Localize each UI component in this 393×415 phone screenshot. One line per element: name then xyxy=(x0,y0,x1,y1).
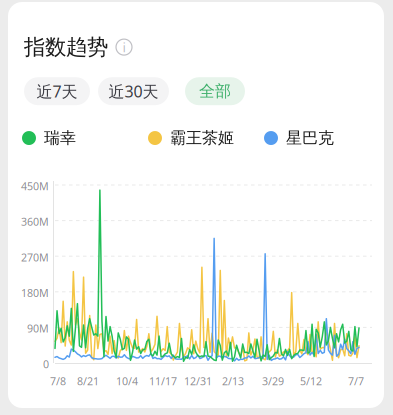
staticText: 2/13 xyxy=(222,374,244,388)
button[interactable]: 全部 xyxy=(185,77,245,105)
staticText: 0 xyxy=(43,357,49,371)
staticText: 近30天 xyxy=(108,81,158,102)
staticText: 180M xyxy=(21,286,49,300)
staticText: 3/29 xyxy=(262,374,284,388)
staticText: 近7天 xyxy=(36,81,77,102)
staticText: 5/12 xyxy=(300,374,322,388)
staticText: 450M xyxy=(21,179,49,193)
staticText: 瑞幸 xyxy=(44,128,76,148)
button[interactable]: About index trend xyxy=(116,39,132,55)
staticText: i xyxy=(122,38,125,56)
staticText: 霸王茶姬 xyxy=(170,128,234,148)
staticText: 8/21 xyxy=(77,374,99,388)
staticText: 360M xyxy=(21,215,49,229)
button[interactable]: 近30天 xyxy=(98,77,169,105)
staticText: 全部 xyxy=(199,81,231,101)
button[interactable]: 近7天 xyxy=(24,77,90,105)
staticText: 11/17 xyxy=(149,374,177,388)
staticText: 270M xyxy=(21,250,49,264)
staticText: 星巴克 xyxy=(286,128,334,148)
staticText: 10/4 xyxy=(116,374,138,388)
staticText: 指数趋势 xyxy=(24,34,108,60)
staticText: 90M xyxy=(27,321,49,336)
staticText: 7/7 xyxy=(348,374,364,388)
staticText: 7/8 xyxy=(50,374,66,388)
staticText: 12/31 xyxy=(184,374,212,388)
